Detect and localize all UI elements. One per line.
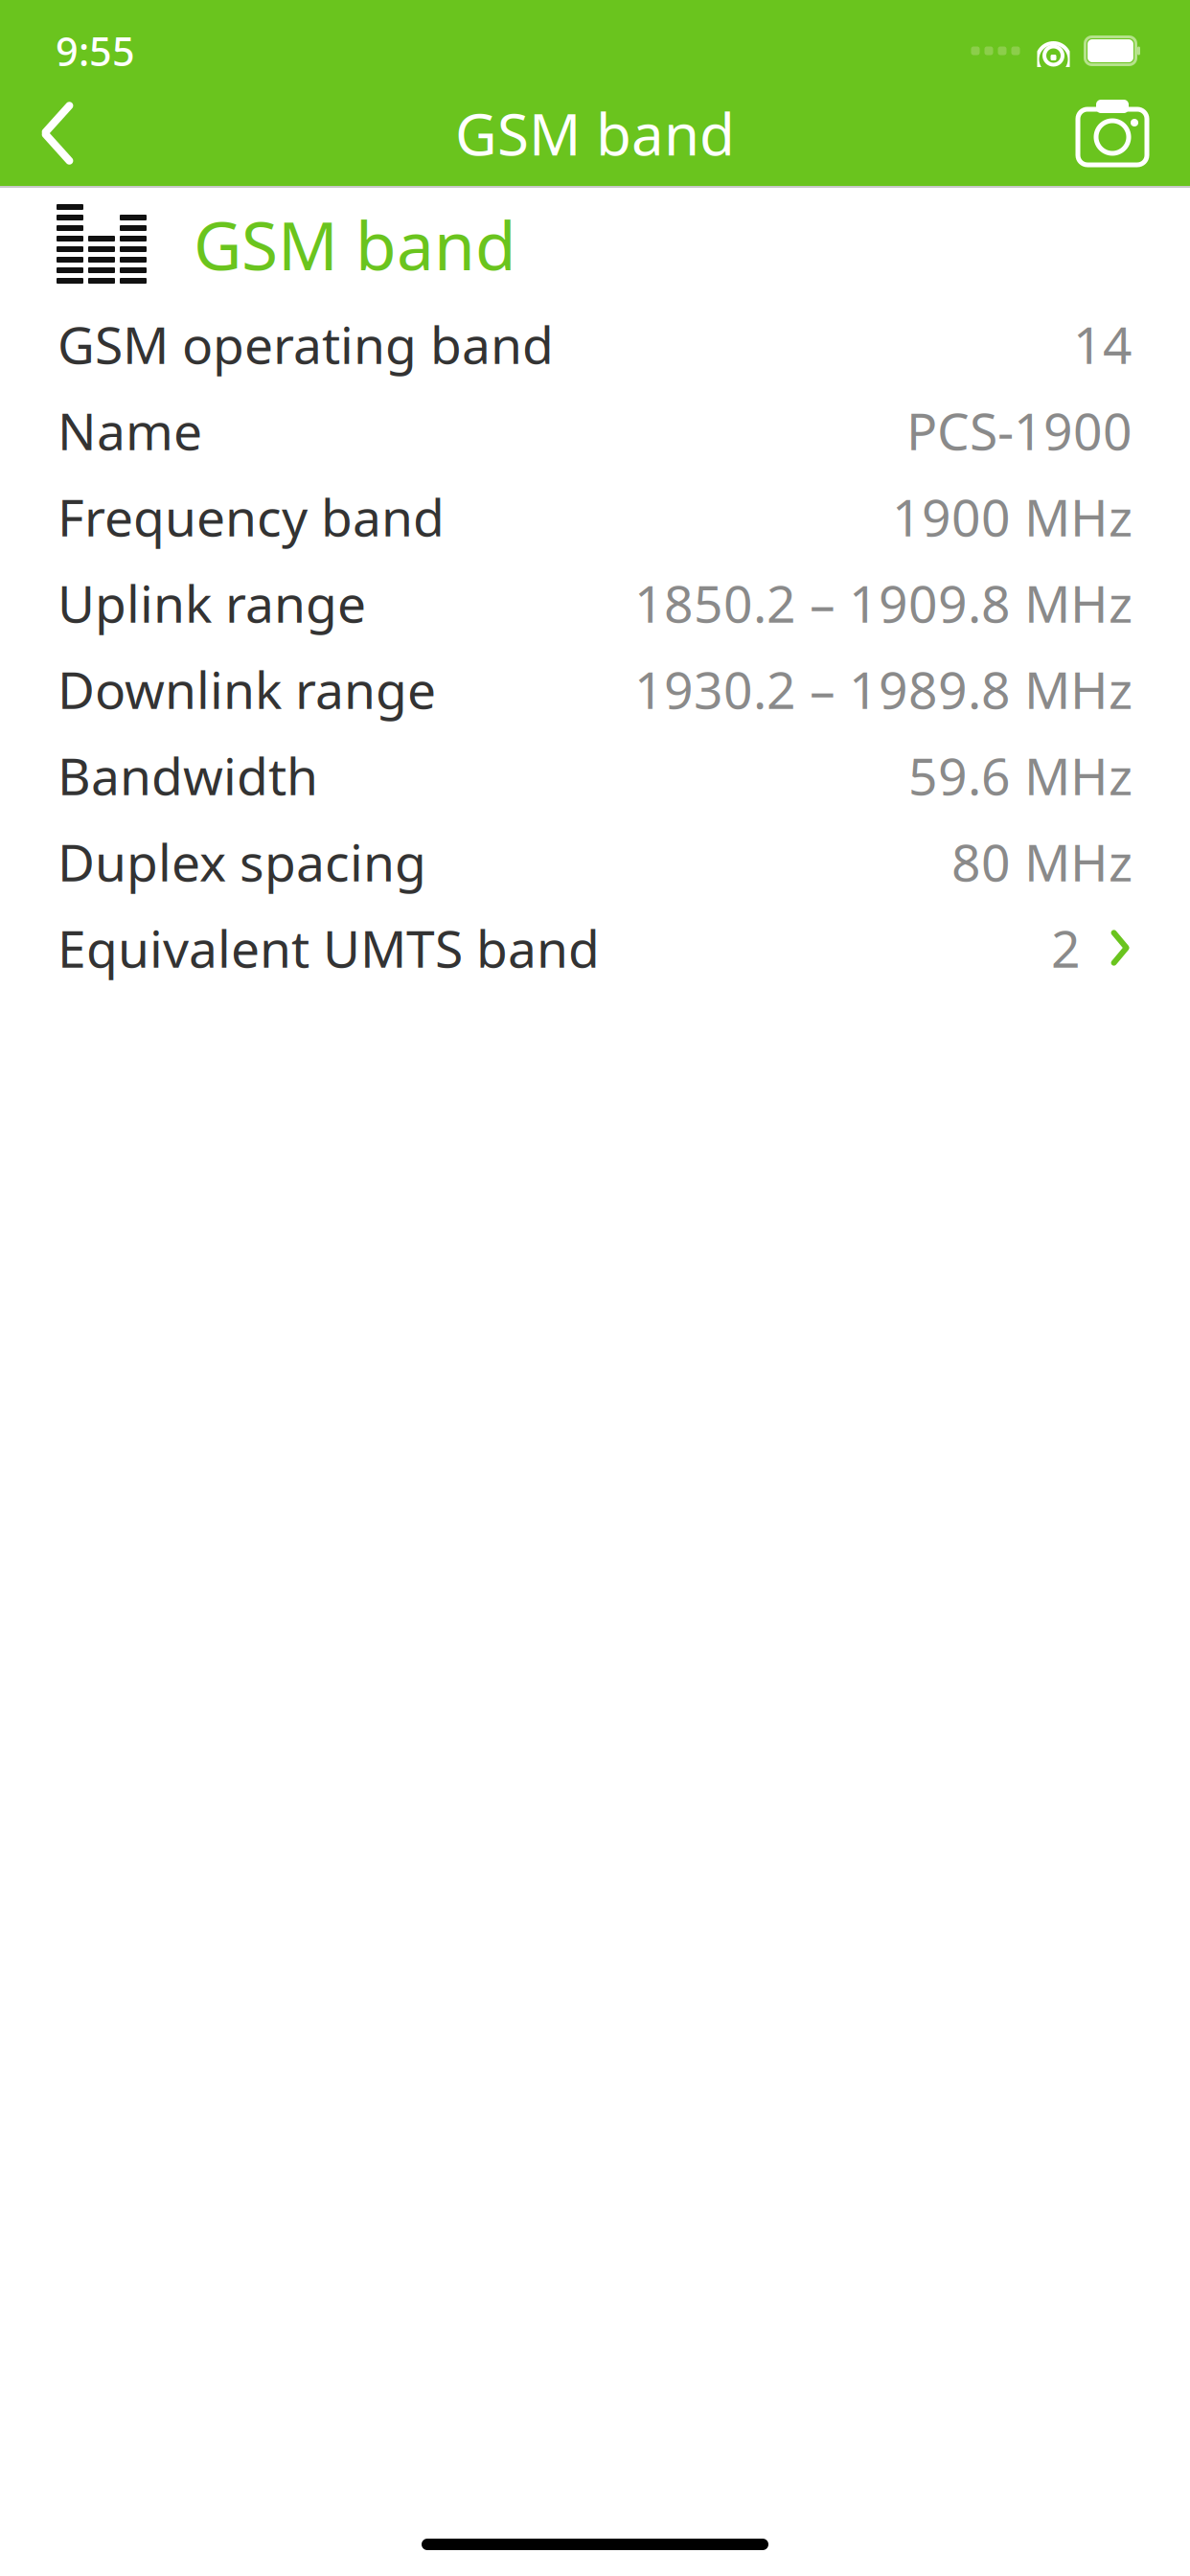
button[interactable]: Back: [15, 82, 100, 184]
staticText: Duplex spacing: [57, 828, 426, 895]
staticText: 1900 MHz: [892, 483, 1133, 550]
button[interactable]: Equivalent UMTS band: [0, 905, 1190, 991]
staticText: GSM operating band: [57, 310, 554, 378]
staticText: Bandwidth: [57, 741, 318, 809]
staticText: PCS-1900: [906, 396, 1133, 464]
staticText: GSM band: [455, 95, 735, 171]
button[interactable]: Camera: [1056, 86, 1169, 180]
staticText: Equivalent UMTS band: [57, 914, 600, 982]
staticText: Downlink range: [57, 655, 436, 723]
staticText: Uplink range: [57, 569, 366, 637]
staticText: 1850.2 – 1909.8 MHz: [634, 569, 1133, 637]
staticText: GSM band: [194, 200, 516, 289]
staticText: 59.6 MHz: [908, 741, 1133, 809]
staticText: 1930.2 – 1989.8 MHz: [634, 655, 1133, 723]
staticText: 80 MHz: [951, 828, 1133, 895]
staticText: Name: [57, 396, 202, 464]
staticText: 2: [1051, 914, 1081, 982]
staticText: 9:55: [56, 25, 135, 77]
staticText: Frequency band: [57, 483, 445, 550]
staticText: 14: [1073, 310, 1133, 378]
